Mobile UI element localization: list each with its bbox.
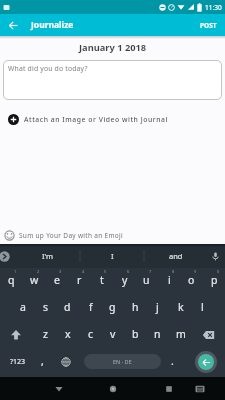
staticText: b [132, 327, 139, 341]
staticText: What did you do today? [8, 64, 88, 73]
staticText: Sum up Your Day with an Emoji [19, 231, 124, 240]
button[interactable]: Sum up Your Day with an Emoji [4, 229, 225, 241]
button[interactable]: p [203, 269, 225, 291]
staticText: . [171, 354, 174, 368]
staticText: s [43, 300, 49, 314]
button[interactable]: s [34, 296, 57, 318]
staticText: 11:30 [205, 3, 222, 12]
button[interactable]: v [101, 323, 124, 345]
staticText: k [178, 300, 184, 314]
staticText: o [188, 273, 195, 287]
staticText: a [20, 300, 26, 314]
button[interactable]: i [158, 269, 181, 291]
button[interactable]: a [11, 296, 34, 318]
button[interactable]: j [146, 296, 169, 318]
staticText: and [169, 251, 183, 261]
staticText: l [201, 300, 204, 314]
staticText: m [176, 327, 186, 341]
staticText: j [156, 300, 159, 314]
staticText: f [89, 300, 93, 314]
button[interactable]: n [146, 323, 169, 345]
staticText: Attach an Image or Video with Journal [24, 115, 168, 124]
button[interactable]: h [124, 296, 147, 318]
button[interactable]: y [113, 269, 136, 291]
staticText: 2 [37, 269, 40, 274]
staticText: POST [200, 21, 217, 30]
button[interactable]: b [124, 323, 147, 345]
button[interactable]: o [180, 269, 203, 291]
button[interactable]: ?123 [6, 351, 29, 373]
button[interactable]: k [169, 296, 192, 318]
staticText: 4 [82, 269, 85, 274]
button[interactable]: t [90, 269, 113, 291]
staticText: 3 [59, 269, 62, 274]
staticText: q [8, 273, 15, 287]
button[interactable]: l [191, 296, 214, 318]
staticText: v [110, 327, 116, 341]
button[interactable]: . [161, 350, 184, 372]
staticText: x [65, 327, 71, 341]
staticText: EN · DE [113, 358, 132, 365]
staticText: d [64, 300, 71, 314]
button[interactable]: EN · DE [84, 354, 161, 369]
staticText: u [143, 273, 150, 287]
button[interactable]: I'm [24, 244, 72, 268]
button[interactable] [6, 18, 20, 32]
button[interactable]: m [169, 323, 192, 345]
button[interactable]: r [68, 269, 91, 291]
staticText: z [43, 327, 48, 341]
button[interactable]: What did you do today? [3, 60, 222, 100]
button[interactable] [49, 379, 69, 399]
staticText: c [88, 327, 94, 341]
button[interactable]: q [0, 269, 23, 291]
button[interactable]: c [79, 323, 102, 345]
button[interactable]: z [34, 323, 57, 345]
button[interactable]: , [31, 350, 54, 372]
button[interactable] [196, 324, 220, 346]
button[interactable]: g [101, 296, 124, 318]
staticText: 7 [149, 269, 152, 274]
button[interactable]: u [135, 269, 158, 291]
staticText: i [168, 273, 171, 287]
staticText: Journalize [31, 19, 74, 31]
button[interactable]: and [152, 244, 200, 268]
staticText: 0 [217, 269, 220, 274]
staticText: 1 [14, 269, 17, 274]
staticText: 8 [172, 269, 175, 274]
staticText: p [211, 273, 218, 287]
staticText: 6 [127, 269, 130, 274]
button[interactable] [4, 324, 28, 346]
button[interactable]: f [79, 296, 102, 318]
staticText: r [77, 273, 82, 287]
button[interactable] [103, 379, 123, 399]
button[interactable]: w [23, 269, 46, 291]
button[interactable] [55, 351, 77, 372]
staticText: 5 [104, 269, 107, 274]
staticText: January 1 2018 [79, 41, 147, 54]
button[interactable]: I [88, 244, 136, 268]
button[interactable]: e [45, 269, 68, 291]
staticText: I'm [42, 251, 54, 261]
staticText: ?123 [10, 357, 26, 367]
staticText: y [122, 273, 128, 287]
staticText: , [41, 354, 44, 368]
button[interactable]: d [56, 296, 79, 318]
staticText: e [54, 273, 60, 287]
button[interactable]: Attach an Image or Video with Journal [8, 113, 225, 125]
staticText: h [132, 300, 139, 314]
staticText: 9 [194, 269, 197, 274]
button[interactable]: x [56, 323, 79, 345]
staticText: n [154, 327, 161, 341]
button[interactable] [190, 379, 210, 399]
button[interactable]: POST [198, 19, 219, 32]
staticText: g [109, 300, 116, 314]
button[interactable] [198, 354, 214, 370]
staticText: w [30, 273, 39, 287]
staticText: I [111, 251, 114, 261]
button[interactable] [159, 379, 179, 399]
staticText: t [100, 273, 104, 287]
